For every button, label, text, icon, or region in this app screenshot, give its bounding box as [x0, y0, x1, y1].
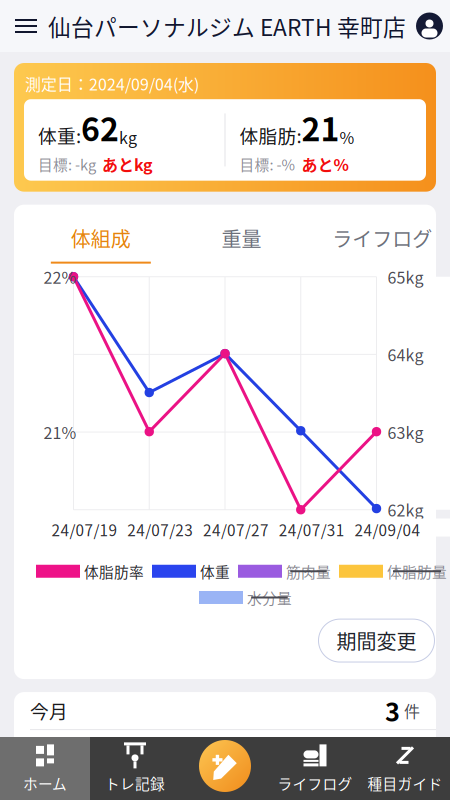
- staticText: 24/07/19: [51, 518, 117, 541]
- button[interactable]: 種目ガイド: [360, 737, 450, 800]
- staticText: 22%: [43, 265, 76, 288]
- button[interactable]: 期間変更: [318, 619, 434, 662]
- staticText: 63kg: [387, 420, 423, 443]
- staticText: 来月: [30, 735, 68, 762]
- staticText: 期間変更: [336, 626, 416, 655]
- staticText: あと%: [301, 152, 348, 176]
- staticText: 62kg: [387, 498, 423, 521]
- staticText: 62: [81, 104, 119, 150]
- staticText: 水分量: [247, 587, 292, 608]
- staticText: 体脂肪:: [239, 121, 301, 148]
- staticText: 体脂肪量: [387, 561, 447, 582]
- staticText: ライフログ: [277, 772, 352, 794]
- staticText: 体組成: [71, 224, 131, 253]
- staticText: 21%: [43, 420, 76, 443]
- button[interactable]: トレ記録: [90, 737, 180, 800]
- staticText: 重量: [221, 224, 261, 253]
- staticText: ホーム: [23, 772, 67, 794]
- staticText: 今月: [30, 697, 68, 724]
- staticText: あとkg: [102, 152, 153, 176]
- staticText: 4: [385, 730, 400, 767]
- staticText: 21: [301, 104, 339, 150]
- staticText: 件: [400, 737, 420, 760]
- button[interactable]: 重量: [171, 224, 312, 264]
- staticText: 件: [400, 699, 420, 722]
- staticText: 目標: -kg: [38, 153, 96, 175]
- staticText: 24/07/31: [279, 518, 345, 541]
- button[interactable]: 体組成: [30, 224, 171, 264]
- staticText: 種目ガイド: [367, 772, 442, 794]
- button[interactable]: Menu: [0, 0, 48, 52]
- staticText: 24/07/27: [203, 518, 269, 541]
- staticText: 体重: [200, 561, 230, 582]
- staticText: kg: [119, 125, 137, 148]
- button[interactable]: ライフログ: [270, 737, 360, 800]
- staticText: 体脂肪率: [84, 561, 144, 582]
- staticText: 24/07/23: [127, 518, 193, 541]
- staticText: トレ記録: [105, 772, 165, 794]
- staticText: 筋肉量: [286, 561, 331, 582]
- staticText: 測定日：2024/09/04(水): [25, 72, 199, 95]
- staticText: 目標: -%: [239, 153, 295, 175]
- staticText: 24/09/04: [354, 518, 420, 541]
- staticText: ライフログ: [332, 224, 432, 253]
- staticText: 64kg: [387, 343, 423, 366]
- button[interactable]: ホーム: [0, 737, 90, 800]
- staticText: %: [339, 125, 354, 148]
- button[interactable]: Account: [416, 0, 450, 52]
- staticText: 体重:: [38, 121, 81, 148]
- staticText: 仙台パーソナルジム EARTH 幸町店: [48, 10, 406, 42]
- button[interactable]: 記録を追加: [196, 737, 254, 795]
- button[interactable]: 来月: [14, 730, 436, 767]
- staticText: 3: [385, 692, 400, 729]
- button[interactable]: ライフログ: [312, 224, 450, 264]
- button[interactable]: 今月: [14, 692, 436, 729]
- staticText: 65kg: [387, 265, 423, 288]
